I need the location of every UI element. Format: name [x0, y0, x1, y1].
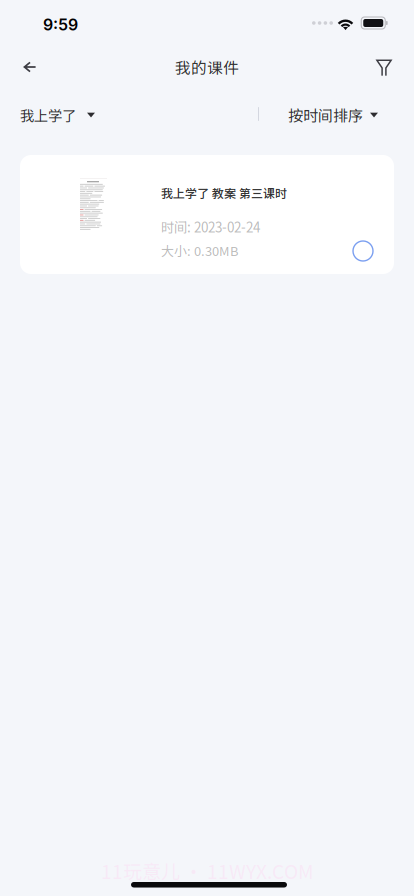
- button[interactable]: Back: [8, 45, 52, 89]
- button[interactable]: 9:59: [43, 15, 78, 34]
- button[interactable]: Filter: [362, 46, 406, 90]
- staticText: 时间: 2023-02-24: [161, 217, 260, 236]
- staticText: 按时间排序: [288, 104, 363, 126]
- staticText: 11玩意儿 · 11WYX.COM: [101, 857, 313, 885]
- staticText: 我上学了 教案 第三课时: [161, 184, 287, 201]
- staticText: 我上学了: [20, 105, 76, 125]
- button[interactable]: 我上学了 教案 第三课时: [20, 155, 394, 274]
- staticText: 我的课件: [175, 56, 239, 78]
- staticText: 9:59: [43, 15, 78, 34]
- button[interactable]: 我上学了: [0, 95, 115, 135]
- button[interactable]: 按时间排序: [272, 95, 414, 135]
- staticText: 大小: 0.30MB: [161, 241, 238, 260]
